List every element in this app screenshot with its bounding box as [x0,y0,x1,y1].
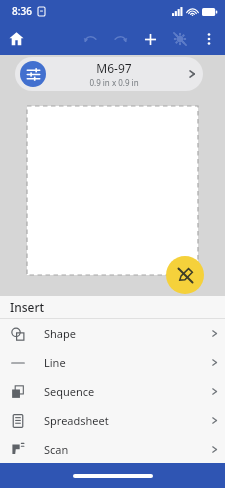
button[interactable]: More options [195,25,223,53]
button[interactable]: Sequence [0,377,225,406]
staticText: 8:36 [12,4,32,18]
staticText: Scan [44,442,69,457]
button[interactable]: Home [0,22,33,55]
button[interactable]: Line [0,348,225,377]
button[interactable]: Spreadsheet [0,406,225,435]
button[interactable]: Redo [105,24,135,54]
button[interactable]: Toggle snap off [165,24,195,54]
button[interactable]: Drawing off [166,256,204,294]
staticText: Sequence [44,384,95,399]
staticText: 0.9 in x 0.9 in [89,77,139,88]
button[interactable]: Add [135,24,165,54]
staticText: Spreadsheet [44,413,109,428]
staticText: M6-97 [96,60,132,76]
button[interactable]: Scan [0,435,225,463]
staticText: Shape [44,326,76,341]
button[interactable]: Shape [0,319,225,348]
staticText: Insert [10,299,45,315]
button[interactable]: M6-97 [15,57,203,91]
staticText: Line [44,355,66,370]
button[interactable]: Undo [75,24,105,54]
